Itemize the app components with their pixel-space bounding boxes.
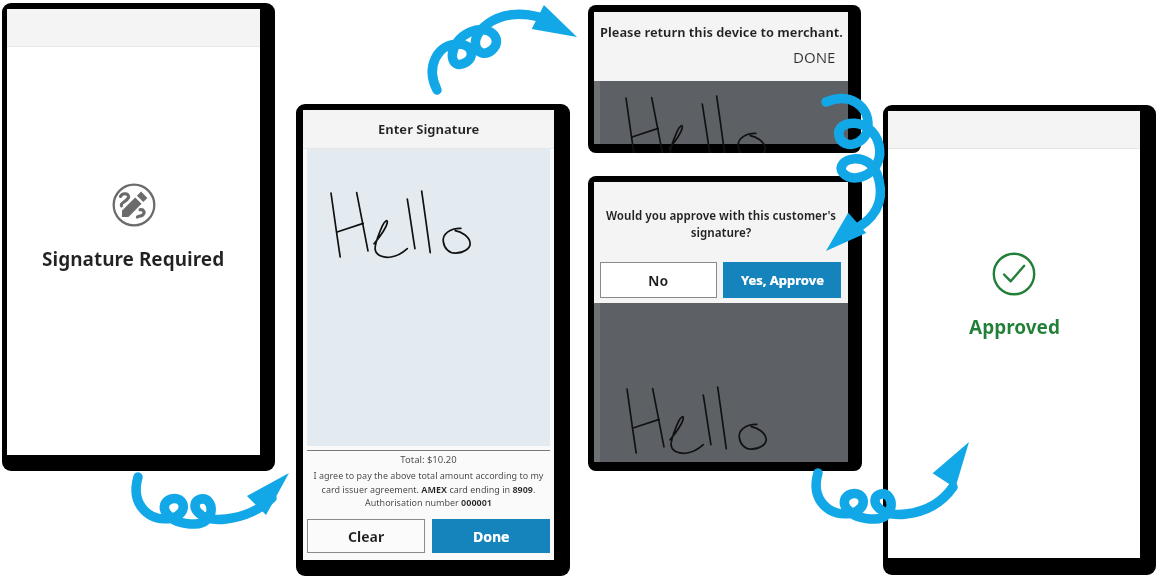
button[interactable]: Done <box>432 519 550 553</box>
button[interactable]: DONE <box>783 45 848 69</box>
staticText: Signature Required <box>42 246 225 272</box>
other: Approved <box>992 252 1036 296</box>
staticText: Authorisation number 000001 <box>303 496 554 508</box>
other: Signature required <box>112 183 156 227</box>
staticText: Please return this device to merchant. <box>600 23 843 40</box>
staticText: Clear <box>348 527 385 546</box>
staticText: Total: $10.20 <box>303 453 554 466</box>
staticText: DONE <box>793 47 836 67</box>
staticText: No <box>648 271 669 290</box>
staticText: Enter Signature <box>378 120 480 138</box>
button[interactable]: Signature drawing area <box>307 149 550 446</box>
staticText: Yes, Approve <box>741 271 824 289</box>
button[interactable]: Clear <box>307 519 425 553</box>
staticText: I agree to pay the above total amount ac… <box>303 469 554 496</box>
staticText: Done <box>473 527 510 546</box>
button[interactable]: No <box>600 262 717 298</box>
staticText: Would you approve with this customer's s… <box>604 208 838 241</box>
button[interactable]: Yes, Approve <box>723 262 841 298</box>
staticText: Approved <box>969 314 1060 340</box>
